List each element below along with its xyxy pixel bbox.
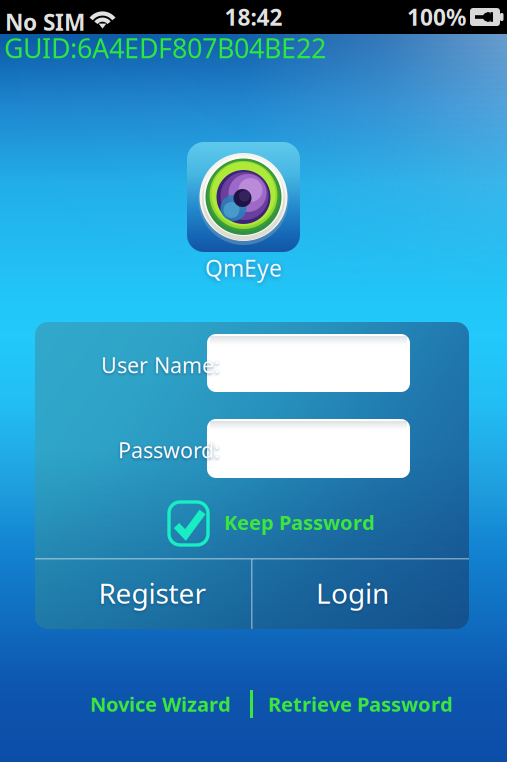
staticText: Novice Wizard xyxy=(90,691,231,717)
staticText: Retrieve Password xyxy=(268,691,453,717)
staticText: No SIM xyxy=(5,7,85,37)
staticText: User Name: xyxy=(101,351,220,379)
staticText: QmEye xyxy=(205,253,282,283)
staticText: Login xyxy=(316,574,389,612)
button[interactable]: Login xyxy=(244,558,461,628)
staticText: 18:42 xyxy=(224,2,282,32)
staticText: GUID:6A4EDF807B04BE22 xyxy=(4,30,326,66)
button[interactable]: Novice Wizard xyxy=(80,684,241,724)
staticText: Keep Password xyxy=(224,509,375,536)
button[interactable]: Register xyxy=(44,558,261,628)
button[interactable]: Retrieve Password xyxy=(258,684,463,724)
staticText: Password: xyxy=(118,436,220,464)
staticText: 100% xyxy=(407,2,466,32)
staticText: Register xyxy=(98,574,206,612)
